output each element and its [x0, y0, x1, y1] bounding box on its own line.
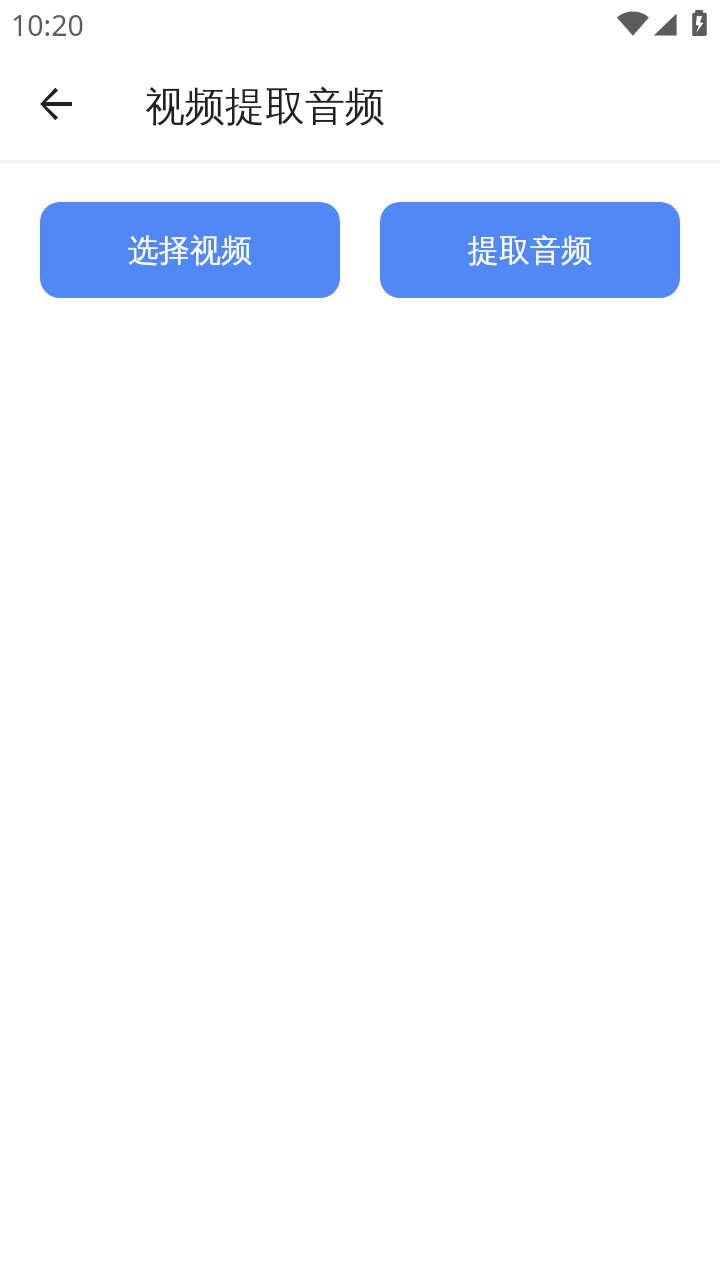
button[interactable]: 选择视频: [40, 202, 340, 298]
staticText: 视频提取音频: [145, 81, 385, 131]
button[interactable]: Back: [20, 69, 92, 141]
button[interactable]: 提取音频: [380, 202, 680, 298]
staticText: 选择视频: [128, 231, 252, 270]
staticText: 10:20: [11, 6, 84, 45]
staticText: 提取音频: [468, 231, 592, 270]
